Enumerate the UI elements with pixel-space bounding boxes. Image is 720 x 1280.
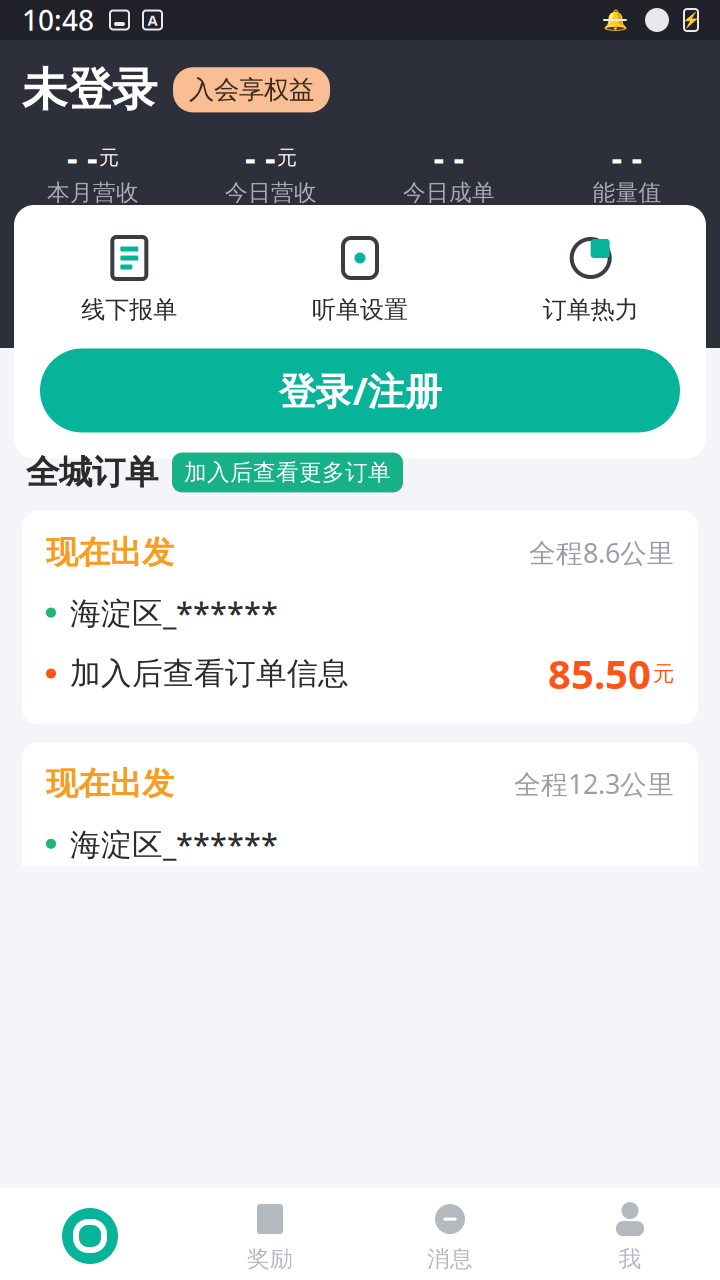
staticText: 现在出发 — [46, 764, 174, 803]
button[interactable]: 奖励 — [180, 1193, 360, 1279]
staticText: A — [147, 10, 157, 30]
staticText: 海淀区_****** — [70, 823, 278, 864]
staticText: 订单热力 — [543, 295, 639, 324]
staticText: 10:48 — [22, 1, 94, 39]
staticText: 今日成单 — [403, 179, 495, 206]
staticText: 我 — [618, 1245, 641, 1273]
button[interactable]: 订单热力 — [475, 231, 706, 328]
staticText: 加入后查看更多订单 — [184, 459, 391, 486]
staticText: 全程31.9公里 — [514, 1230, 674, 1265]
button[interactable]: 登录/注册 — [40, 348, 680, 432]
staticText: 本月营收 — [47, 179, 139, 206]
staticText: 85.50 — [548, 647, 651, 700]
staticText: 元 — [99, 145, 119, 170]
staticText: 现在出发 — [46, 533, 174, 572]
staticText: - - — [611, 135, 642, 180]
staticText: 🔔 — [602, 9, 627, 31]
button[interactable]: 听单设置 — [245, 231, 475, 328]
staticText: - - — [245, 135, 276, 180]
staticText: 全程12.3公里 — [514, 766, 674, 801]
staticText: 全程8.6公里 — [529, 535, 674, 570]
staticText: 消息 — [427, 1245, 473, 1273]
staticText: 登录/注册 — [278, 366, 441, 415]
staticText: - - — [433, 135, 464, 180]
staticText: 加入后查看订单信息 — [70, 655, 349, 692]
staticText: 今日营收 — [225, 179, 317, 206]
staticText: 元 — [277, 145, 297, 170]
button[interactable]: 消息 — [360, 1193, 540, 1279]
button[interactable]: 线下报单 — [14, 231, 245, 328]
staticText: 明天12:20出发 — [46, 1226, 255, 1269]
staticText: 能量值 — [592, 179, 661, 206]
button[interactable]: 首页 — [0, 1201, 180, 1271]
staticText: ⚡ — [682, 12, 700, 28]
staticText: - - — [67, 135, 98, 180]
staticText: 入会享权益 — [189, 74, 314, 105]
staticText: 奖励 — [247, 1245, 293, 1273]
button[interactable]: 现在出发 — [22, 742, 698, 955]
button[interactable]: 现在出发 — [22, 511, 698, 724]
button[interactable]: 我 — [540, 1193, 720, 1279]
staticText: 海淀区_****** — [70, 592, 278, 633]
button[interactable]: 入会享权益 — [173, 67, 330, 112]
staticText: 全城订单 — [26, 452, 158, 493]
button[interactable]: 加入后查看更多订单 — [172, 453, 403, 492]
staticText: 听单设置 — [312, 295, 408, 324]
staticText: 线下报单 — [81, 295, 177, 324]
staticText: 元 — [653, 660, 674, 687]
button[interactable]: 明天12:20出发 — [22, 1204, 698, 1280]
staticText: 未登录 — [22, 62, 157, 118]
